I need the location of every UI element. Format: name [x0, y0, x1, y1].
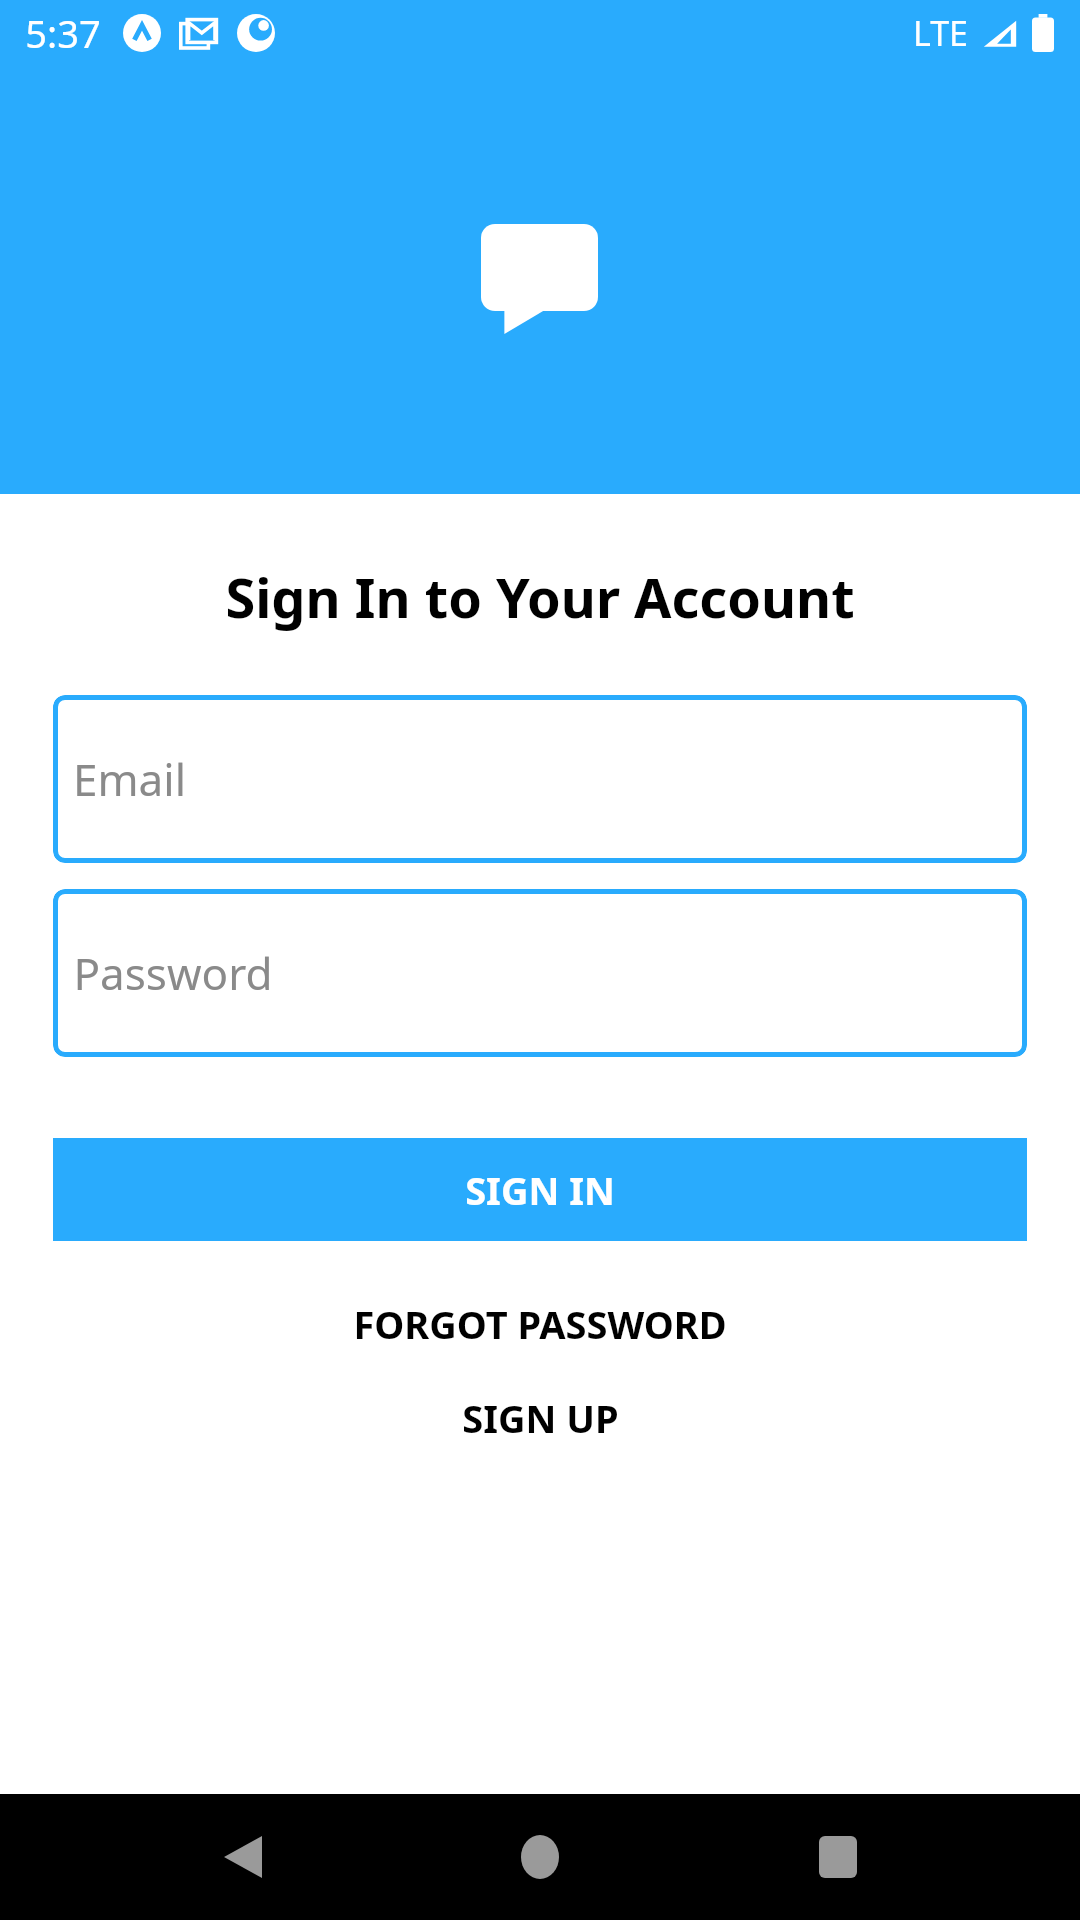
- button[interactable]: Password: [53, 889, 1027, 1057]
- button[interactable]: SIGN UP: [0, 1387, 1080, 1449]
- button[interactable]: Email: [53, 695, 1027, 863]
- staticText: LTE: [913, 10, 968, 56]
- staticText: Sign In to Your Account: [0, 560, 1080, 634]
- button[interactable]: Recent apps: [783, 1802, 893, 1912]
- button[interactable]: FORGOT PASSWORD: [0, 1293, 1080, 1355]
- staticText: 5:37: [25, 7, 101, 59]
- button[interactable]: Home: [485, 1802, 595, 1912]
- button[interactable]: Back: [188, 1802, 298, 1912]
- button[interactable]: SIGN IN: [53, 1138, 1027, 1241]
- staticText: Email: [73, 749, 186, 809]
- staticText: SIGN UP: [462, 1392, 619, 1444]
- staticText: SIGN IN: [465, 1164, 615, 1216]
- staticText: FORGOT PASSWORD: [353, 1298, 727, 1350]
- staticText: Password: [73, 943, 273, 1003]
